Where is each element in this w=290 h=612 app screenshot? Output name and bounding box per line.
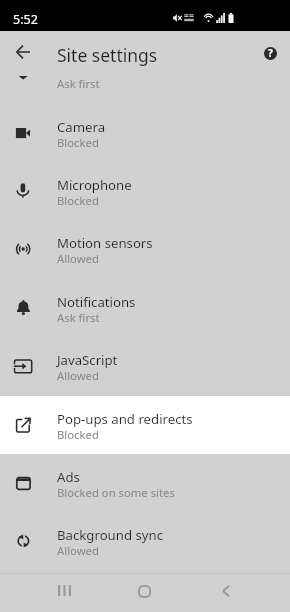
staticText: JavaScript	[57, 351, 118, 369]
button[interactable]: Back	[5, 34, 41, 70]
staticText: Motion sensors	[57, 234, 153, 252]
staticText: Ads	[57, 468, 80, 486]
staticText: ?	[268, 46, 273, 60]
button[interactable]: Background sync	[0, 512, 290, 570]
staticText: Notifications	[57, 293, 136, 311]
staticText: Pop-ups and redirects	[57, 410, 193, 428]
staticText: Location	[57, 59, 110, 77]
button[interactable]: Notifications	[0, 279, 290, 337]
button[interactable]: JavaScript	[0, 337, 290, 395]
button[interactable]: Motion sensors	[0, 220, 290, 278]
button[interactable]: Help	[252, 35, 288, 71]
button[interactable]: Back	[204, 571, 248, 610]
staticText: 5:52	[13, 11, 38, 28]
button[interactable]: Pop-ups and redirects	[0, 396, 290, 454]
staticText: Blocked on some sites	[57, 485, 175, 500]
staticText: Blocked	[57, 427, 99, 442]
staticText: Site settings	[57, 43, 158, 67]
button[interactable]: Recent apps	[42, 571, 86, 610]
staticText: Allowed	[57, 368, 99, 383]
staticText: Blocked	[57, 193, 99, 208]
button[interactable]: Ads	[0, 454, 290, 512]
button[interactable]: Microphone	[0, 162, 290, 220]
button[interactable]: Location	[0, 45, 290, 103]
button[interactable]: Home	[122, 572, 166, 611]
staticText: Microphone	[57, 176, 132, 194]
staticText: Camera	[57, 118, 106, 136]
staticText: Blocked	[57, 135, 99, 150]
staticText: Allowed	[57, 251, 99, 266]
staticText: Ask first	[57, 76, 100, 91]
button[interactable]: Camera	[0, 104, 290, 162]
staticText: Background sync	[57, 526, 163, 544]
staticText: Ask first	[57, 310, 100, 325]
staticText: Allowed	[57, 543, 99, 558]
